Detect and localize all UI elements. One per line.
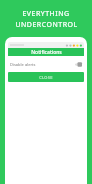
staticText: CLOSE xyxy=(39,75,53,80)
staticText: EVERYTHING xyxy=(22,9,70,19)
staticText: UNDERCONTROL xyxy=(15,20,78,30)
staticText: Notifications xyxy=(31,49,62,56)
button[interactable]: Disable alerts toggle xyxy=(75,62,82,67)
button[interactable]: Disable alerts xyxy=(8,60,84,68)
button[interactable]: CLOSE xyxy=(8,72,84,82)
staticText: Disable alerts xyxy=(10,62,36,67)
